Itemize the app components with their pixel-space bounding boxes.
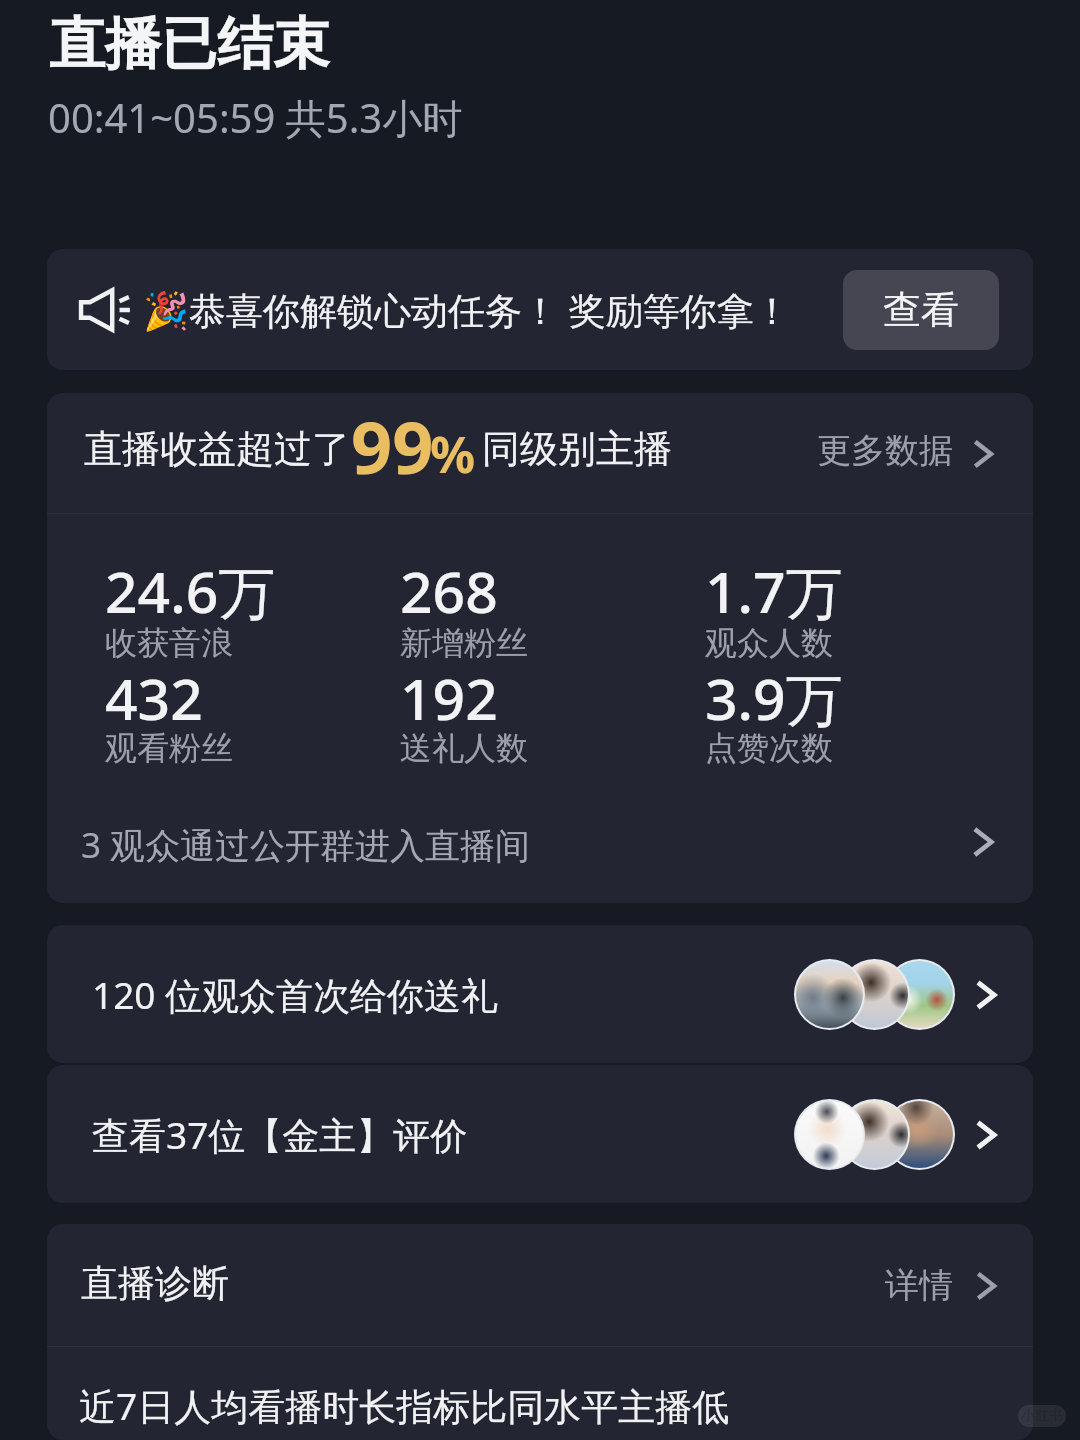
staticText: 直播诊断 [81,1260,229,1307]
staticText: 同级别主播 [482,425,672,473]
staticText: 268 [400,552,498,630]
staticText: 99 [351,397,434,495]
staticText: 120 位观众首次给你送礼 [92,969,499,1020]
staticText: 新增粉丝 [400,623,528,663]
staticText: 查看 [883,286,959,334]
button[interactable]: Announcement [47,249,1033,370]
staticText: 更多数据 [817,429,953,472]
staticText: 小红书 [1021,1407,1063,1425]
staticText: 详情 [885,1264,953,1307]
button[interactable]: 查看37位【金主】评价 [47,1065,1033,1203]
button[interactable] [47,790,1033,903]
staticText: 直播收益超过了 [84,425,350,473]
staticText: 432 [105,659,203,737]
staticText: 1.7万 [705,552,843,630]
staticText: 点赞次数 [705,728,833,768]
staticText: 近7日人均看播时长指标比同水平主播低 [79,1380,730,1431]
staticText: 查看37位【金主】评价 [92,1109,468,1160]
staticText: 🎉恭喜你解锁心动任务！ 奖励等你拿！ [143,284,791,335]
button[interactable]: 查看 [843,270,999,350]
staticText: 观看粉丝 [105,728,233,768]
button[interactable] [47,393,1033,513]
button[interactable] [47,1224,1033,1346]
staticText: 收获音浪 [105,623,233,663]
staticText: 24.6万 [105,552,276,630]
staticText: 观众人数 [705,623,833,663]
other: Announcement [80,284,132,336]
staticText: 送礼人数 [400,728,528,768]
staticText: 00:41~05:59 共5.3小时 [48,90,463,145]
staticText: 3 观众通过公开群进入直播间 [81,821,531,869]
staticText: 192 [400,659,498,737]
button[interactable]: 120 位观众首次给你送礼 [47,925,1033,1063]
staticText: % [430,420,476,488]
staticText: 直播已结束 [49,9,329,80]
staticText: 3.9万 [705,659,843,737]
